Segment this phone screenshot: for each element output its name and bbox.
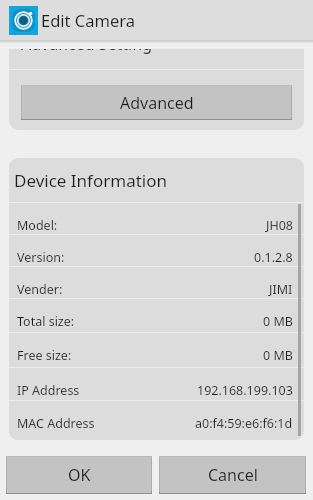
- button[interactable]: Vender:: [9, 267, 304, 298]
- staticText: OK: [68, 464, 91, 486]
- button[interactable]: Advanced: [22, 86, 291, 119]
- button[interactable]: Camera: [9, 6, 38, 35]
- button[interactable]: Model:: [9, 203, 304, 234]
- staticText: Model:: [17, 217, 58, 234]
- staticText: IP Address: [17, 382, 80, 399]
- button[interactable]: MAC Address: [9, 401, 304, 439]
- staticText: Advanced Setting: [21, 49, 152, 55]
- staticText: JH08: [266, 217, 293, 234]
- staticText: Device Information: [14, 169, 168, 192]
- staticText: Free size:: [17, 347, 72, 364]
- staticText: Edit Camera: [41, 9, 135, 31]
- staticText: a0:f4:59:e6:f6:1d: [195, 415, 293, 432]
- staticText: Advanced: [120, 92, 194, 114]
- button[interactable]: IP Address: [9, 368, 304, 400]
- staticText: 0 MB: [263, 347, 293, 364]
- staticText: Vender:: [17, 281, 63, 298]
- button[interactable]: Free size:: [9, 333, 304, 367]
- staticText: MAC Address: [17, 415, 95, 432]
- button[interactable]: Version:: [9, 235, 304, 266]
- staticText: Cancel: [208, 464, 258, 486]
- staticText: 0 MB: [263, 313, 293, 330]
- staticText: Version:: [17, 249, 65, 266]
- staticText: 0.1.2.8: [254, 249, 293, 266]
- button[interactable]: OK: [7, 457, 151, 493]
- staticText: JIMI: [269, 281, 293, 298]
- button[interactable]: Total size:: [9, 299, 304, 332]
- button[interactable]: Cancel: [160, 457, 305, 493]
- staticText: 192.168.199.103: [197, 382, 293, 399]
- staticText: Total size:: [17, 313, 75, 330]
